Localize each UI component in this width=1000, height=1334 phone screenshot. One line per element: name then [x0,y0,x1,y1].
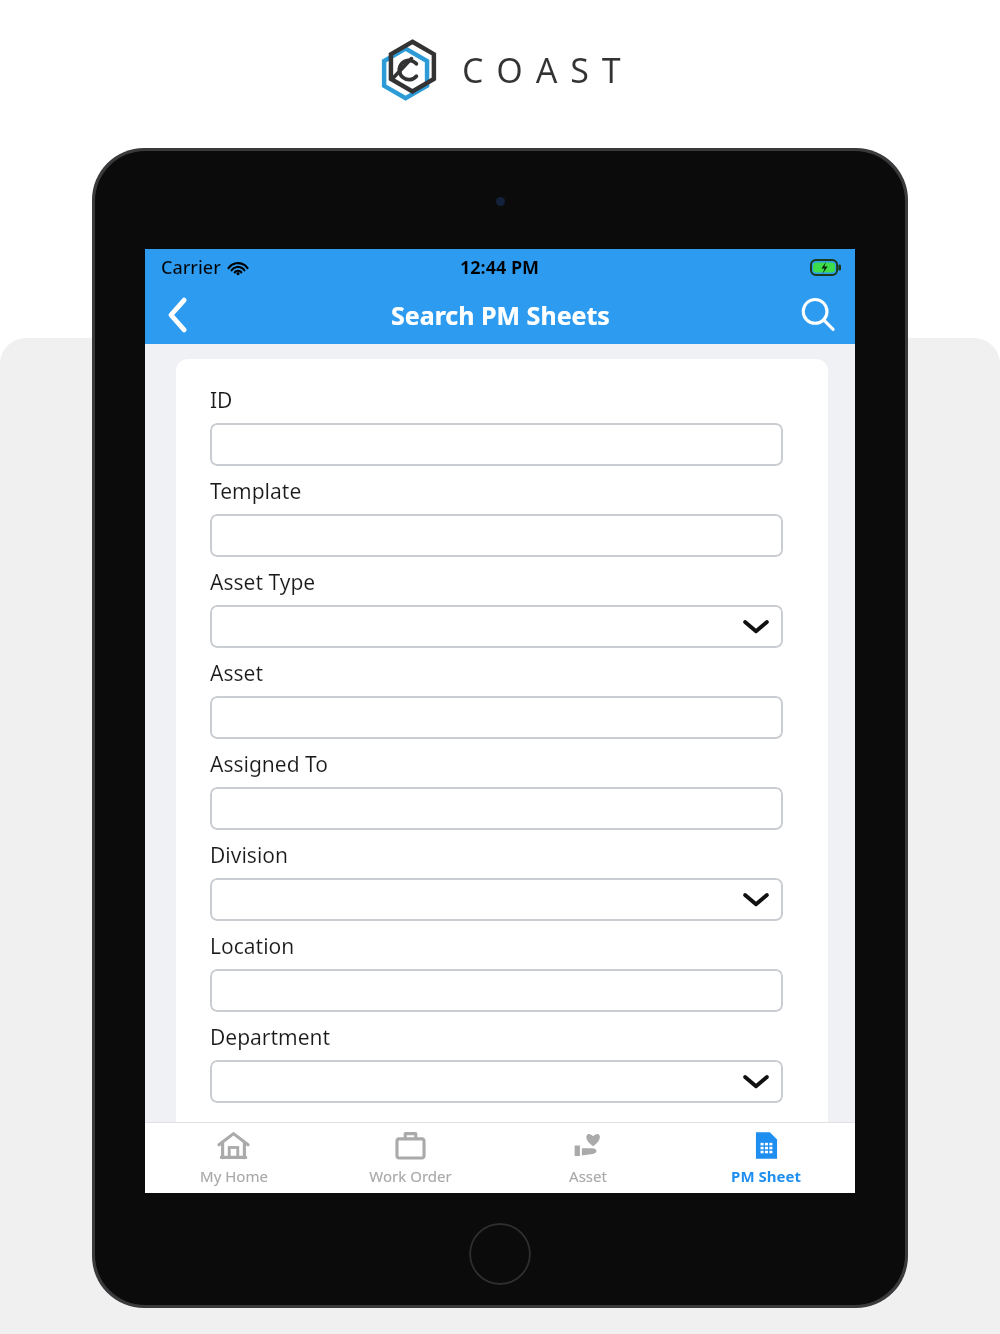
staticText: Carrier [161,255,221,280]
staticText: Asset [210,659,263,688]
staticText: My Home [200,1166,268,1186]
staticText: PM Sheet [731,1166,801,1186]
button[interactable] [210,878,783,921]
button[interactable] [210,787,783,830]
staticText: Location [210,932,295,961]
staticText: Assigned To [210,750,328,779]
staticText: Department [210,1023,331,1052]
staticText: Search PM Sheets [391,298,610,332]
button[interactable] [210,605,783,648]
button[interactable] [210,696,783,739]
button[interactable]: Work Order [322,1122,499,1193]
staticText: Work Order [369,1166,452,1186]
button[interactable]: My Home [145,1122,322,1193]
staticText: C O A S T [462,47,623,93]
staticText: Template [210,477,302,506]
button[interactable]: Asset [499,1122,677,1193]
button[interactable] [210,514,783,557]
staticText: Division [210,841,288,870]
button[interactable] [210,423,783,466]
staticText: Asset Type [210,568,316,597]
button[interactable] [210,1060,783,1103]
staticText: Asset [569,1166,607,1186]
button[interactable]: PM Sheet [677,1122,855,1193]
button[interactable]: Search [781,286,855,344]
staticText: ID [210,386,233,415]
button[interactable] [210,969,783,1012]
button[interactable]: Back [145,286,211,344]
staticText: 12:44 PM [460,255,540,280]
